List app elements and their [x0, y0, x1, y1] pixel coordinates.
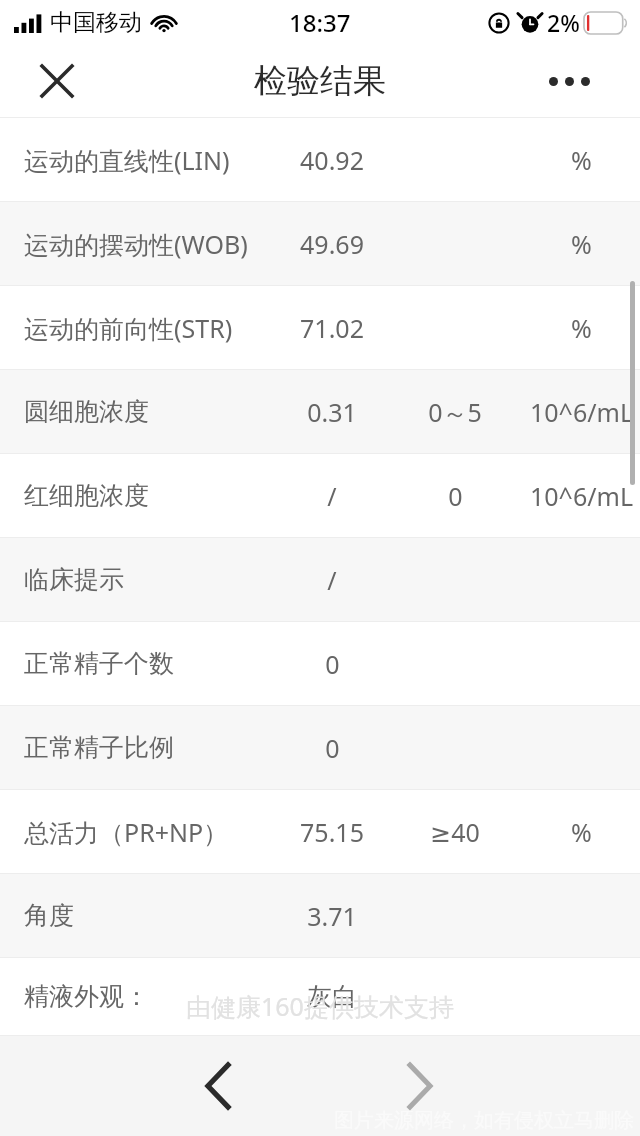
button[interactable]: 圆细胞浓度 [0, 369, 640, 453]
button[interactable]: 总活力（PR+NP） [0, 789, 640, 873]
staticText: / [327, 563, 337, 597]
staticText: 71.02 [300, 311, 364, 345]
button[interactable]: 下一页 [382, 1048, 458, 1124]
staticText: 运动的直线性(LIN) [24, 143, 230, 177]
staticText: % [571, 311, 592, 345]
button[interactable]: 精液外观： [0, 957, 640, 1035]
staticText: 总活力（PR+NP） [24, 815, 229, 849]
button[interactable]: 运动的直线性(LIN) [0, 117, 640, 201]
staticText: 0.31 [307, 395, 357, 429]
staticText: ≥40 [430, 815, 480, 849]
staticText: 2% [547, 7, 580, 38]
staticText: 灰白 [307, 981, 357, 1012]
staticText: % [571, 815, 592, 849]
button[interactable]: 运动的前向性(STR) [0, 285, 640, 369]
staticText: / [327, 479, 337, 513]
staticText: 0 [325, 731, 340, 765]
staticText: 18:37 [289, 6, 351, 39]
button[interactable]: 上一页 [180, 1048, 256, 1124]
staticText: % [571, 227, 592, 261]
staticText: 精液外观： [24, 981, 149, 1012]
staticText: 3.71 [307, 899, 357, 933]
staticText: 10^6/mL [530, 395, 633, 429]
staticText: 中国移动 [50, 8, 142, 37]
staticText: 红细胞浓度 [24, 480, 149, 511]
staticText: 正常精子比例 [24, 732, 174, 763]
button[interactable]: 红细胞浓度 [0, 453, 640, 537]
staticText: 运动的前向性(STR) [24, 311, 233, 345]
staticText: 40.92 [300, 143, 364, 177]
button[interactable]: 正常精子个数 [0, 621, 640, 705]
staticText: 检验结果 [254, 60, 386, 102]
button[interactable]: 角度 [0, 873, 640, 957]
staticText: 75.15 [300, 815, 364, 849]
button[interactable]: 临床提示 [0, 537, 640, 621]
button[interactable]: 关闭 [28, 52, 86, 110]
staticText: 临床提示 [24, 564, 124, 595]
button[interactable]: 运动的摆动性(WOB) [0, 201, 640, 285]
staticText: 0 [325, 647, 340, 681]
staticText: 49.69 [300, 227, 364, 261]
staticText: 10^6/mL [530, 479, 633, 513]
staticText: 正常精子个数 [24, 648, 174, 679]
staticText: 0 [448, 479, 463, 513]
staticText: 运动的摆动性(WOB) [24, 227, 248, 261]
staticText: % [571, 143, 592, 177]
staticText: 圆细胞浓度 [24, 396, 149, 427]
staticText: 0～5 [428, 395, 482, 429]
button[interactable]: 更多 [538, 56, 600, 106]
button[interactable]: 正常精子比例 [0, 705, 640, 789]
staticText: 由健康160提供技术支持 [186, 989, 454, 1023]
staticText: 角度 [24, 900, 74, 931]
